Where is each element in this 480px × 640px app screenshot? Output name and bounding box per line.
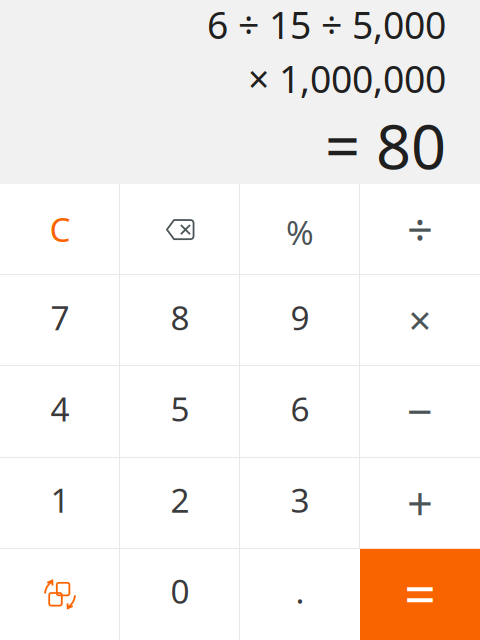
staticText: 5 — [170, 386, 189, 431]
staticText: × 1,000,000 — [248, 54, 446, 103]
button[interactable]: 7 — [0, 275, 120, 366]
staticText: C — [49, 207, 70, 251]
staticText: = 80 — [325, 105, 446, 186]
button[interactable]: Convert units — [0, 549, 120, 640]
staticText: × — [408, 293, 431, 346]
staticText: 3 — [290, 478, 309, 522]
button[interactable]: 2 — [120, 458, 240, 549]
button[interactable]: 6 — [240, 366, 360, 458]
staticText: = — [404, 555, 436, 630]
staticText: 8 — [170, 295, 189, 339]
staticText: 2 — [170, 478, 189, 522]
button[interactable]: ÷ — [360, 184, 480, 275]
button[interactable]: 1 — [0, 458, 120, 549]
staticText: . — [295, 569, 304, 613]
button[interactable]: 0 — [120, 549, 240, 640]
staticText: + — [407, 473, 433, 533]
button[interactable]: 3 — [240, 458, 360, 549]
staticText: 0 — [170, 569, 189, 613]
staticText: 6 — [290, 386, 309, 431]
button[interactable]: 5 — [120, 366, 240, 458]
staticText: 1 — [50, 478, 69, 522]
staticText: 4 — [50, 386, 69, 431]
button[interactable]: 9 — [240, 275, 360, 366]
staticText: − — [407, 380, 433, 441]
button[interactable]: C — [0, 184, 120, 275]
staticText: % — [286, 210, 314, 254]
button[interactable]: − — [360, 366, 480, 458]
staticText: 9 — [290, 295, 309, 339]
button[interactable]: × — [360, 275, 480, 366]
staticText: 7 — [50, 295, 69, 339]
button[interactable]: 8 — [120, 275, 240, 366]
button[interactable]: Backspace — [120, 184, 240, 275]
button[interactable]: = — [360, 549, 480, 640]
staticText: ÷ — [407, 199, 433, 259]
staticText: 6 ÷ 15 ÷ 5,000 — [207, 0, 446, 49]
button[interactable]: % — [240, 184, 360, 275]
button[interactable]: + — [360, 458, 480, 549]
button[interactable]: . — [240, 549, 360, 640]
button[interactable]: 4 — [0, 366, 120, 458]
